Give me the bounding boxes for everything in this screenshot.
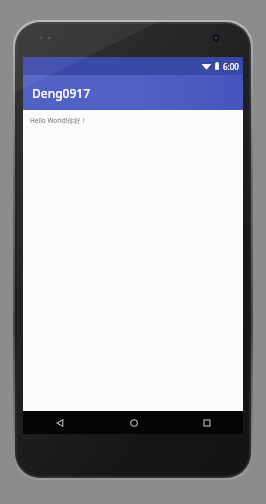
button[interactable]: Home	[97, 411, 170, 434]
button[interactable]: Recent apps	[170, 411, 243, 434]
staticText: Hello World!你好！	[30, 116, 87, 125]
button[interactable]: Deng0917	[23, 75, 243, 110]
button[interactable]: Back	[23, 411, 97, 434]
staticText: 6:00	[223, 61, 239, 72]
staticText: Deng0917	[32, 85, 91, 101]
